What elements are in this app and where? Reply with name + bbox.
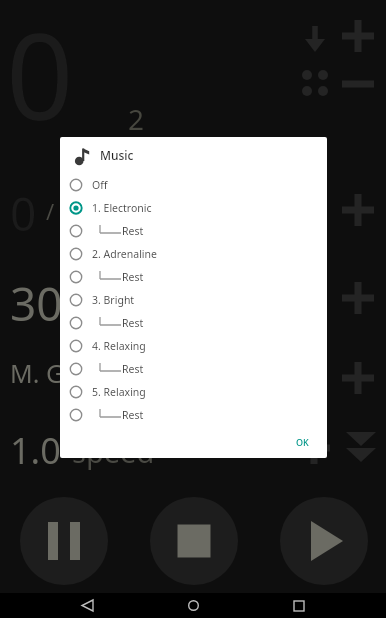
button[interactable]: 1. Electronic [60, 196, 327, 219]
button[interactable]: Increase [338, 16, 378, 56]
button[interactable]: OK [290, 432, 315, 452]
button[interactable]: Home [174, 593, 212, 618]
button[interactable]: Rest [60, 357, 327, 380]
button[interactable]: Add exercise [338, 358, 378, 398]
button[interactable]: 3. Bright [60, 288, 327, 311]
staticText: Rest [122, 362, 144, 376]
staticText: 2 [128, 100, 145, 138]
button[interactable]: Decrease [338, 64, 378, 104]
button[interactable]: Off [60, 173, 327, 196]
staticText: M. G [10, 356, 65, 390]
button[interactable]: Back [68, 593, 106, 618]
button[interactable]: Slower [246, 430, 286, 470]
button[interactable]: Stop [150, 497, 238, 585]
button[interactable]: Faster [294, 428, 334, 468]
button[interactable]: Rest [60, 219, 327, 242]
staticText: 0 [6, 0, 74, 155]
staticText: 0 [10, 182, 37, 245]
button[interactable]: Add round [338, 190, 378, 230]
button[interactable]: 4. Relaxing [60, 334, 327, 357]
staticText: OK [296, 436, 309, 448]
staticText: Music [100, 147, 134, 163]
staticText: 4. Relaxing [92, 339, 146, 353]
staticText: Rest [122, 408, 144, 422]
staticText: 2. Adrenaline [92, 247, 157, 261]
button[interactable]: 2. Adrenaline [60, 242, 327, 265]
staticText: 30 [10, 272, 63, 335]
button[interactable]: Rest [60, 403, 327, 426]
button[interactable]: Add time [338, 278, 378, 318]
button[interactable]: Layout grid [294, 62, 336, 104]
staticText: Rest [122, 224, 144, 238]
button[interactable]: Pause [20, 497, 108, 585]
button[interactable]: Scroll down [342, 430, 380, 468]
staticText: / [46, 196, 55, 226]
staticText: Rest [122, 316, 144, 330]
staticText: 5. Relaxing [92, 385, 146, 399]
button[interactable]: Rest [60, 265, 327, 288]
staticText: 1. Electronic [92, 201, 152, 215]
staticText: Rest [122, 270, 144, 284]
staticText: Off [92, 178, 108, 192]
button[interactable]: 5. Relaxing [60, 380, 327, 403]
staticText: speed [72, 432, 155, 471]
button[interactable]: Rest [60, 311, 327, 334]
staticText: 3. Bright [92, 293, 135, 307]
button[interactable]: Play [280, 497, 368, 585]
button[interactable]: Collapse [294, 18, 336, 60]
button[interactable]: Recents [280, 593, 318, 618]
staticText: 1.0 [10, 426, 61, 475]
